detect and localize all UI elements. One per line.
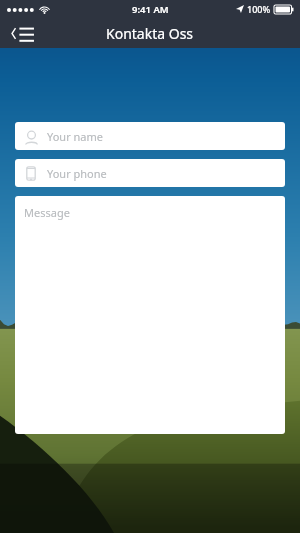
staticText: Your name [47, 129, 103, 144]
button[interactable]: Menu [8, 20, 42, 46]
button[interactable]: Your name [15, 122, 285, 150]
staticText: Message [24, 205, 70, 220]
staticText: Kontakta Oss [106, 24, 194, 43]
button[interactable]: Message [15, 196, 285, 434]
staticText: 100% [247, 3, 271, 15]
staticText: Your phone [47, 166, 107, 181]
button[interactable]: Your phone [15, 159, 285, 187]
staticText: 9:41 AM [132, 3, 169, 16]
